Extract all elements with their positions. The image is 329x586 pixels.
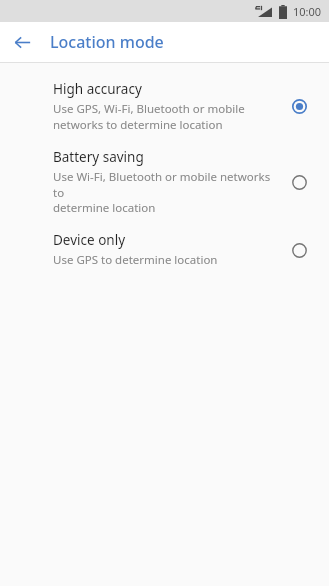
staticText: Device only	[53, 231, 126, 249]
staticText: Use GPS, Wi-Fi, Bluetooth or mobile netw…	[53, 101, 245, 132]
button[interactable]: High accuracy	[0, 72, 329, 140]
staticText: High accuracy	[53, 80, 142, 98]
button[interactable]: Battery saving	[0, 140, 329, 223]
button[interactable]: Device only	[0, 223, 329, 276]
staticText: Use GPS to determine location	[53, 252, 218, 268]
button[interactable]: Back	[8, 28, 36, 56]
staticText: Battery saving	[53, 148, 144, 166]
staticText: Use Wi-Fi, Bluetooth or mobile networks …	[53, 169, 277, 215]
staticText: 10:00	[293, 4, 322, 19]
staticText: Location mode	[50, 31, 164, 53]
